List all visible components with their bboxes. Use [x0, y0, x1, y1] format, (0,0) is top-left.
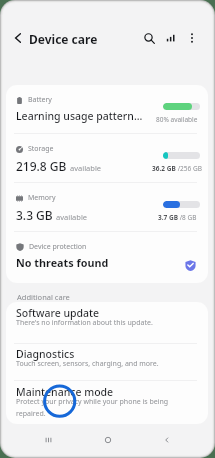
staticText: Device protection	[29, 242, 87, 252]
staticText: Diagnostics	[16, 347, 75, 361]
staticText: No threats found	[16, 255, 109, 270]
button[interactable]: Back	[5, 25, 31, 51]
staticText: 36.2 GB	[152, 164, 176, 173]
button[interactable]: Search	[136, 25, 162, 51]
staticText: available	[56, 212, 88, 222]
button[interactable]: Device protection	[6, 232, 208, 283]
button[interactable]: Software update	[6, 302, 208, 343]
staticText: Battery	[28, 95, 52, 105]
button[interactable]: Back	[153, 426, 181, 454]
staticText: 80% available	[156, 115, 198, 124]
button[interactable]: Recents	[34, 426, 62, 454]
button[interactable]: Home	[94, 426, 122, 454]
staticText: Learning usage pattern...	[16, 109, 143, 123]
staticText: 3.7 GB	[158, 213, 178, 222]
staticText: Software update	[16, 306, 100, 320]
staticText: Memory	[28, 193, 56, 203]
staticText: Touch screen, sensors, charging, and mor…	[16, 359, 159, 369]
button[interactable]: More options	[179, 25, 205, 51]
staticText: available	[70, 163, 102, 173]
staticText: Additional care	[17, 292, 70, 302]
staticText: Storage	[28, 144, 54, 154]
staticText: 219.8 GB	[16, 158, 67, 174]
button[interactable]: Maintenance mode	[6, 381, 208, 424]
staticText: /8 GB	[178, 213, 197, 222]
staticText: Maintenance mode	[16, 385, 114, 399]
staticText: /256 GB	[176, 164, 202, 173]
button[interactable]: Battery	[6, 85, 208, 134]
staticText: There's no information about this update…	[16, 318, 153, 328]
button[interactable]: Memory	[6, 183, 208, 232]
staticText: 3.3 GB	[16, 207, 53, 223]
button[interactable]: Storage	[6, 134, 208, 183]
staticText: Device care	[29, 31, 98, 47]
button[interactable]: Usage chart	[158, 25, 184, 51]
button[interactable]: Diagnostics	[6, 343, 208, 380]
staticText: Protect your privacy while your phone is…	[16, 397, 188, 418]
